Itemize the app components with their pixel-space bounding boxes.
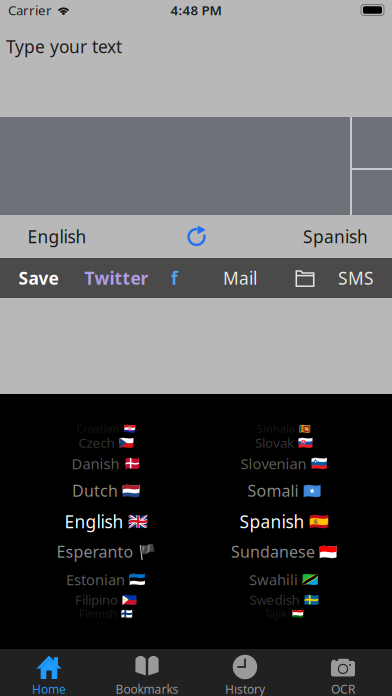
staticText: English xyxy=(27,225,86,248)
staticText: Somali xyxy=(247,480,298,501)
staticText: 🇭🇷 xyxy=(123,423,135,434)
button[interactable]: English xyxy=(0,215,114,258)
staticText: 4:48 PM xyxy=(170,1,221,19)
staticText: English xyxy=(64,510,123,533)
staticText: Twitter xyxy=(84,266,148,289)
staticText: Mail xyxy=(223,266,257,289)
button[interactable]: Save xyxy=(1,258,75,298)
staticText: Danish xyxy=(71,454,119,473)
staticText: Type your text xyxy=(6,35,122,58)
staticText: Croatian xyxy=(76,421,119,436)
staticText: Sundanese xyxy=(231,541,315,562)
staticText: Save xyxy=(18,266,58,289)
staticText: Estonian xyxy=(66,570,125,589)
staticText: 🇸🇮 xyxy=(310,456,327,471)
button[interactable]: Home xyxy=(0,649,98,696)
button[interactable]: Bookmarks xyxy=(98,649,196,696)
staticText: Spanish xyxy=(303,225,368,248)
staticText: OCR xyxy=(331,681,355,696)
staticText: Slovak xyxy=(255,434,294,451)
staticText: Spanish xyxy=(239,510,304,533)
staticText: 🇸🇪 xyxy=(303,593,318,606)
button[interactable]: OCR xyxy=(294,649,392,696)
staticText: 🇸🇴 xyxy=(302,482,320,499)
staticText: 🇫🇮 xyxy=(121,608,133,619)
staticText: 🇨🇿 xyxy=(118,436,133,449)
staticText: 🇵🇭 xyxy=(122,593,137,606)
button[interactable]: History xyxy=(196,649,294,696)
staticText: 🇮🇩 xyxy=(319,543,337,560)
staticText: 🇬🇧 xyxy=(127,512,147,531)
staticText: 🇳🇱 xyxy=(122,482,140,499)
staticText: SMS xyxy=(338,266,374,289)
button[interactable]: Croatian xyxy=(0,394,196,649)
staticText: Esperanto xyxy=(56,541,133,562)
staticText: Czech xyxy=(78,434,114,451)
staticText: Carrier xyxy=(8,1,52,19)
staticText: 🇪🇸 xyxy=(308,512,328,531)
staticText: Dutch xyxy=(72,480,118,501)
staticText: Finnish xyxy=(79,606,117,621)
staticText: Swahili xyxy=(249,570,298,589)
staticText: 🇪🇪 xyxy=(129,572,146,587)
button[interactable]: Sinhala xyxy=(196,394,392,649)
staticText: 🏴 xyxy=(137,543,155,560)
staticText: Home xyxy=(32,681,66,696)
button[interactable]: f xyxy=(157,258,191,298)
button[interactable]: Twitter xyxy=(75,258,157,298)
staticText: Tajik xyxy=(264,606,287,621)
staticText: Bookmarks xyxy=(115,681,178,696)
staticText: 🇹🇯 xyxy=(291,608,303,619)
staticText: Slovenian xyxy=(240,454,306,473)
button[interactable]: Mail xyxy=(191,258,288,298)
staticText: History xyxy=(225,681,265,696)
staticText: 🇱🇰 xyxy=(299,423,311,434)
staticText: f xyxy=(171,266,178,289)
staticText: 🇸🇰 xyxy=(298,436,313,449)
staticText: 🇩🇰 xyxy=(123,456,140,471)
staticText: Filipino xyxy=(75,591,118,608)
button[interactable]: Swap languages xyxy=(114,215,279,258)
button[interactable]: SMS xyxy=(321,258,390,298)
button[interactable]: Files xyxy=(288,258,321,298)
staticText: Swedish xyxy=(249,591,299,608)
staticText: Sinhala xyxy=(257,421,295,436)
button[interactable]: Spanish xyxy=(279,215,392,258)
staticText: 🇹🇿 xyxy=(302,572,319,587)
